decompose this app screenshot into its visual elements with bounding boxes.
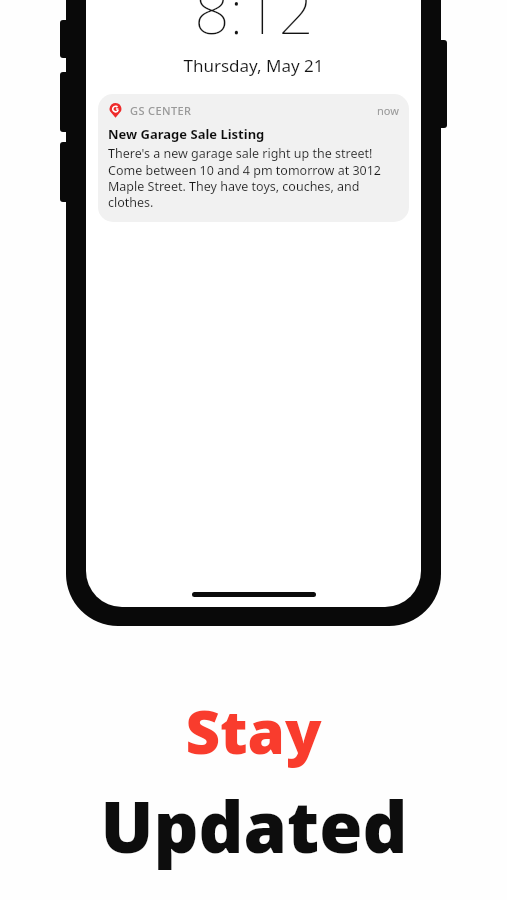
button[interactable]: GS Center location <box>98 94 409 222</box>
staticText: Stay <box>185 690 322 772</box>
staticText: 8:12 <box>194 0 314 52</box>
staticText: now <box>377 103 399 118</box>
staticText: New Garage Sale Listing <box>108 125 265 143</box>
staticText: Thursday, May 21 <box>183 54 324 77</box>
staticText: There's a new garage sale right up the s… <box>108 145 399 210</box>
other: GS Center location <box>108 103 123 118</box>
staticText: Updated <box>100 778 408 873</box>
staticText: GS CENTER <box>130 103 192 118</box>
